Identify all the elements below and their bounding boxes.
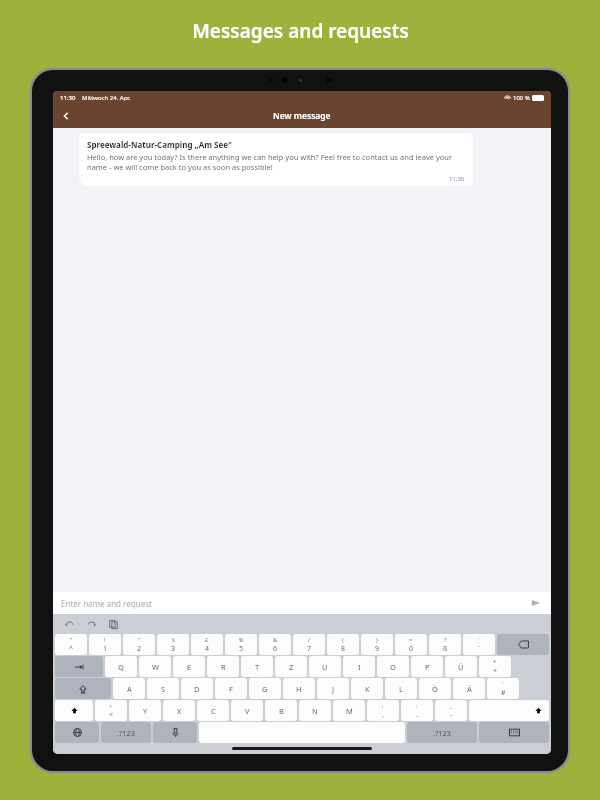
staticText: 7 <box>307 644 312 654</box>
button[interactable]: G <box>249 678 281 699</box>
staticText: F <box>229 684 233 694</box>
staticText: 5 <box>239 644 244 654</box>
button[interactable]: > <box>95 700 127 721</box>
button[interactable] <box>153 722 197 743</box>
button[interactable] <box>497 634 549 655</box>
button[interactable]: Undo <box>61 616 77 632</box>
button[interactable]: F <box>215 678 247 699</box>
button[interactable]: " <box>123 634 155 655</box>
staticText: ^ <box>69 644 74 654</box>
staticText: R <box>221 662 226 672</box>
staticText: ` <box>478 636 480 643</box>
button[interactable]: " <box>55 634 87 655</box>
staticText: I <box>358 662 361 672</box>
button[interactable]: T <box>241 656 273 677</box>
button[interactable]: A <box>113 678 145 699</box>
staticText: % <box>239 636 244 643</box>
button[interactable]: Ü <box>445 656 477 677</box>
button[interactable]: J <box>317 678 349 699</box>
button[interactable] <box>479 722 549 743</box>
button[interactable]: £ <box>191 634 223 655</box>
button[interactable]: & <box>259 634 291 655</box>
staticText: W <box>152 662 159 672</box>
button[interactable]: M <box>333 700 365 721</box>
button[interactable]: ( <box>327 634 359 655</box>
staticText: V <box>245 706 250 716</box>
button[interactable]: Clipboard <box>105 616 121 632</box>
staticText: = <box>409 636 413 643</box>
staticText: G <box>262 684 268 694</box>
button[interactable]: Spreewald-Natur-Camping „Am See" <box>79 133 473 186</box>
button[interactable] <box>55 656 103 677</box>
button[interactable]: E <box>173 656 205 677</box>
button[interactable]: Ä <box>453 678 485 699</box>
button[interactable] <box>55 678 111 699</box>
staticText: T <box>255 662 260 672</box>
button[interactable]: B <box>265 700 297 721</box>
button[interactable]: % <box>225 634 257 655</box>
button[interactable]: W <box>139 656 171 677</box>
button[interactable]: R <box>207 656 239 677</box>
staticText: Y <box>143 706 148 716</box>
button[interactable]: § <box>157 634 189 655</box>
button[interactable]: U <box>309 656 341 677</box>
button[interactable]: Enter name and request <box>53 592 551 614</box>
button[interactable]: Z <box>275 656 307 677</box>
button[interactable]: ! <box>89 634 121 655</box>
button[interactable]: N <box>299 700 331 721</box>
button[interactable] <box>55 722 99 743</box>
button[interactable]: ` <box>463 634 495 655</box>
button[interactable]: * <box>479 656 511 677</box>
button[interactable] <box>55 700 93 721</box>
button[interactable]: Back <box>53 104 79 128</box>
staticText: > <box>109 702 113 709</box>
button[interactable]: Q <box>105 656 137 677</box>
button[interactable]: = <box>395 634 427 655</box>
staticText: J <box>332 684 335 694</box>
staticText: _ <box>450 702 453 709</box>
button[interactable]: D <box>181 678 213 699</box>
staticText: 4 <box>205 644 210 654</box>
staticText: ? <box>444 636 447 643</box>
button[interactable]: H <box>283 678 315 699</box>
button[interactable]: I <box>343 656 375 677</box>
button[interactable]: Send <box>529 596 543 610</box>
staticText: 9 <box>375 644 380 654</box>
button[interactable]: Shift <box>469 700 549 721</box>
staticText: .?123 <box>433 728 452 738</box>
button[interactable]: K <box>351 678 383 699</box>
staticText: Hello, how are you today? Is there anyth… <box>87 152 465 172</box>
staticText: § <box>172 636 175 643</box>
staticText: H <box>296 684 302 694</box>
button[interactable]: .?123 <box>407 722 477 743</box>
button[interactable]: P <box>411 656 443 677</box>
button[interactable]: O <box>377 656 409 677</box>
button[interactable]: Redo <box>83 616 99 632</box>
staticText: £ <box>205 636 209 643</box>
staticText: + <box>493 666 498 676</box>
staticText: < <box>109 710 114 720</box>
staticText: P <box>425 662 430 672</box>
staticText: A <box>127 684 132 694</box>
staticText: Z <box>289 662 294 672</box>
button[interactable]: .?123 <box>101 722 151 743</box>
button[interactable]: X <box>163 700 195 721</box>
button[interactable]: Y <box>129 700 161 721</box>
button[interactable]: S <box>147 678 179 699</box>
button[interactable]: ' <box>487 678 519 699</box>
button[interactable]: ; <box>367 700 399 721</box>
button[interactable]: L <box>385 678 417 699</box>
button[interactable]: Ö <box>419 678 451 699</box>
button[interactable]: C <box>197 700 229 721</box>
button[interactable]: ? <box>429 634 461 655</box>
staticText: X <box>177 706 182 716</box>
button[interactable]: _ <box>435 700 467 721</box>
staticText: - <box>450 710 453 720</box>
staticText: ; <box>382 702 384 709</box>
staticText: 8 <box>341 644 346 654</box>
button[interactable]: V <box>231 700 263 721</box>
button[interactable]: / <box>293 634 325 655</box>
button[interactable]: ) <box>361 634 393 655</box>
button[interactable]: : <box>401 700 433 721</box>
